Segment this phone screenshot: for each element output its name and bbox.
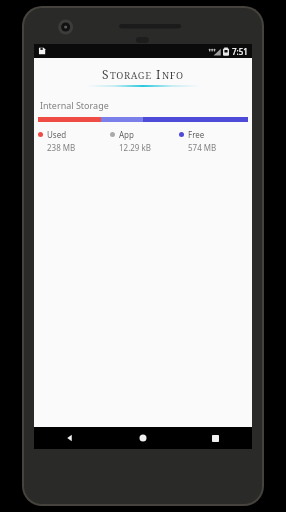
staticText: Free [188,129,205,140]
staticText: I [156,66,162,82]
staticText: 7:51 [232,46,248,57]
button[interactable]: Used [38,129,110,153]
staticText: S [102,66,110,82]
staticText: TORAGE [110,69,152,82]
staticText: Internal Storage [40,99,109,111]
button[interactable]: Recent apps [179,427,252,449]
staticText: 238 MB [47,142,76,153]
button[interactable]: Home [106,427,179,449]
staticText: 574 MB [188,142,217,153]
staticText: App [119,129,134,140]
button[interactable]: S [34,66,252,82]
button[interactable]: App [110,129,179,153]
button[interactable]: Back [34,427,106,449]
staticText: NFO [162,69,184,82]
button[interactable]: Free [179,129,248,153]
button[interactable] [38,117,248,122]
staticText: 12.29 kB [119,142,151,153]
staticText: Used [47,129,67,140]
